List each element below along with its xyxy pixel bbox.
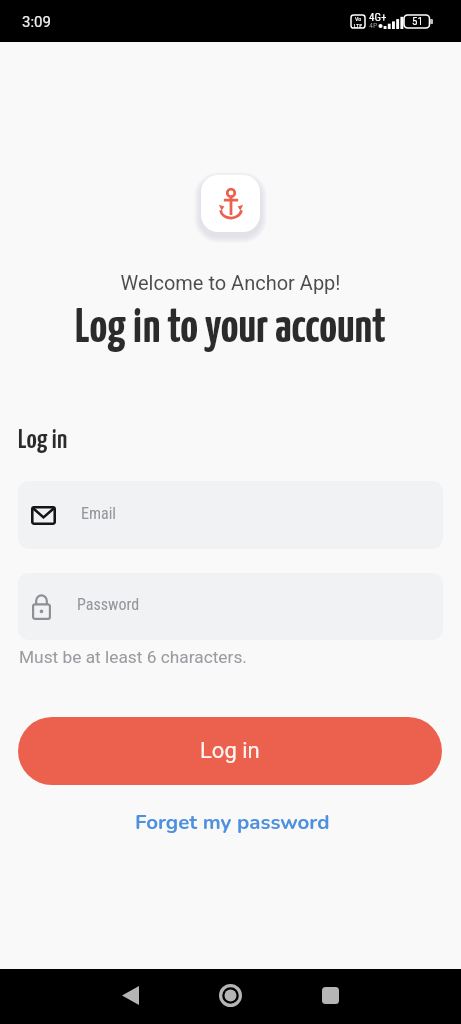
staticText: 4G+ bbox=[369, 11, 387, 24]
staticText: Log in bbox=[200, 738, 260, 764]
button[interactable]: Log in bbox=[18, 717, 442, 785]
staticText: Password bbox=[77, 595, 140, 614]
button[interactable]: Email bbox=[18, 481, 443, 549]
staticText: 4P bbox=[369, 21, 378, 30]
button[interactable]: Password bbox=[18, 573, 443, 640]
button[interactable]: Back bbox=[108, 977, 152, 1013]
staticText: Forget my password bbox=[135, 808, 330, 836]
staticText: Welcome to Anchor App! bbox=[0, 271, 461, 294]
staticText: 51 bbox=[412, 15, 423, 28]
button[interactable]: Home bbox=[208, 975, 253, 1015]
staticText: Must be at least 6 characters. bbox=[19, 647, 247, 667]
button[interactable]: Recent apps bbox=[308, 977, 352, 1013]
button[interactable]: Forget my password bbox=[123, 801, 342, 843]
staticText: 3:09 bbox=[22, 13, 51, 31]
staticText: Vo bbox=[355, 15, 362, 22]
staticText: Email bbox=[81, 504, 117, 523]
staticText: LTE bbox=[354, 22, 363, 28]
staticText: Log in to your account bbox=[0, 306, 461, 352]
staticText: Log in bbox=[18, 427, 68, 453]
